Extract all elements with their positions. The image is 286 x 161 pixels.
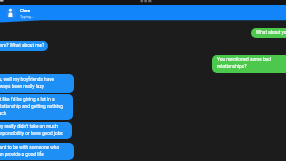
staticText: You mentioned some bad: [217, 57, 271, 64]
staticText: want to be with someone who: [0, 145, 60, 152]
staticText: Typing...: [20, 15, 34, 19]
button[interactable]: hey really didn't take on much: [0, 122, 72, 139]
staticText: ou, well my boyfriends have: [0, 77, 55, 84]
staticText: relationships?: [217, 64, 247, 71]
staticText: mm? What about me?: [0, 43, 45, 50]
button[interactable]: [0, 0, 286, 24]
button[interactable]: mm? What about me?: [0, 41, 48, 51]
staticText: back: [0, 111, 7, 118]
staticText: elt like I'd be giving a lot in a: [0, 97, 55, 104]
staticText: relationship and getting nothing: [0, 104, 63, 111]
staticText: hey really didn't take on much: [0, 124, 58, 131]
staticText: always been really lazy: [0, 84, 44, 91]
staticText: can provide a good life: [0, 152, 44, 159]
staticText: What about you: [256, 30, 286, 37]
button[interactable]: What about you: [251, 28, 286, 38]
button[interactable]: You mentioned some bad: [212, 55, 286, 73]
button[interactable]: elt like I'd be giving a lot in a: [0, 94, 73, 120]
button[interactable]: ou, well my boyfriends have: [0, 74, 74, 93]
other: Profile: [0, 0, 286, 24]
staticText: responsibility or have good jobs: [0, 131, 63, 138]
staticText: Clara: [20, 8, 31, 13]
button[interactable]: want to be with someone who: [0, 143, 74, 160]
